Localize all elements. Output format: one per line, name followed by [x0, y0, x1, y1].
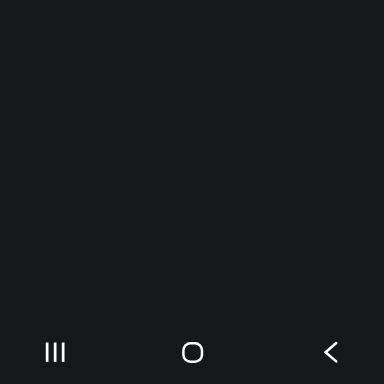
button[interactable]: Back [303, 324, 359, 380]
button[interactable]: Recent apps [27, 324, 83, 380]
button[interactable]: Home [165, 325, 221, 381]
